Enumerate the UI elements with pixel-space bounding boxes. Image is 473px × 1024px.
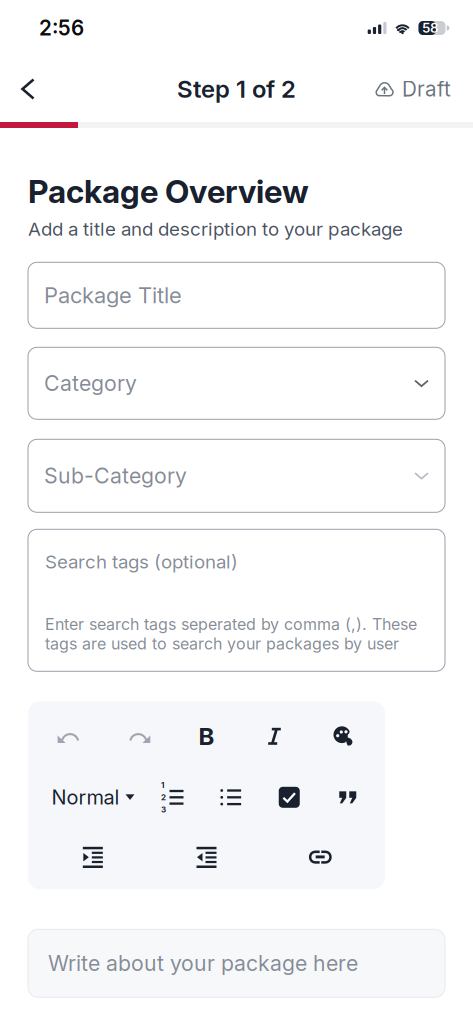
button[interactable]: Numbered list	[143, 767, 201, 827]
staticText: Normal	[51, 785, 119, 809]
staticText: Add a title and description to your pack…	[28, 218, 403, 240]
button[interactable]: Bulleted list	[201, 767, 260, 827]
staticText: Write about your package here	[48, 950, 358, 976]
staticText: B	[198, 722, 214, 751]
staticText: Step 1 of 2	[177, 74, 296, 103]
button[interactable]: Outdent	[150, 827, 263, 887]
button[interactable]: Block quote	[318, 767, 377, 827]
staticText: Category	[44, 370, 137, 396]
button[interactable]: Draft	[375, 67, 451, 111]
staticText: Enter search tags seperated by comma (,)…	[45, 615, 417, 653]
button[interactable]: Package Title	[28, 262, 445, 328]
button[interactable]: Write about your package here	[28, 929, 445, 997]
button[interactable]: Paragraph style	[36, 767, 143, 827]
staticText: 1	[161, 780, 164, 790]
staticText: 58	[422, 20, 439, 36]
staticText: Draft	[402, 76, 451, 101]
staticText: Sub-Category	[44, 463, 187, 489]
button[interactable]: Search tags (optional)	[28, 529, 445, 671]
button[interactable]: Redo	[104, 705, 172, 767]
button[interactable]: Link	[263, 827, 377, 887]
button[interactable]: Back	[21, 67, 61, 111]
button[interactable]: Bold	[172, 705, 241, 767]
button[interactable]: Checklist	[260, 767, 318, 827]
staticText: Package Overview	[28, 172, 309, 211]
staticText: Search tags (optional)	[45, 550, 238, 573]
staticText: 3	[161, 805, 166, 814]
button[interactable]: Category	[28, 347, 445, 419]
button[interactable]: Indent	[36, 827, 150, 887]
staticText: Package Title	[44, 282, 182, 309]
staticText: 2	[161, 792, 166, 802]
button[interactable]: Text colour	[309, 705, 377, 767]
button[interactable]: Sub-Category	[28, 439, 445, 512]
staticText: 2:56	[39, 15, 84, 40]
button[interactable]: Undo	[36, 705, 104, 767]
button[interactable]: Italic	[241, 705, 309, 767]
